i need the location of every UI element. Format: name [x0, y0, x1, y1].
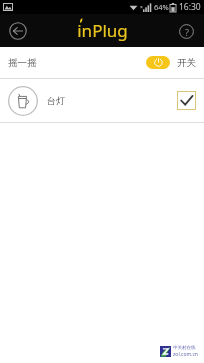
button[interactable]: Help — [176, 21, 196, 41]
staticText: 16:30 — [179, 1, 201, 13]
button[interactable]: 摇一摇 — [0, 47, 204, 78]
staticText: inPlug — [77, 19, 128, 42]
staticText: 摇一摇 — [8, 57, 37, 69]
staticText: zol.com.cn — [173, 351, 198, 358]
button[interactable]: Power toggle — [146, 56, 170, 69]
staticText: 中关村在线 — [173, 345, 196, 351]
staticText: 台灯 — [47, 95, 65, 106]
staticText: 64% — [154, 2, 169, 12]
button[interactable]: Back — [8, 21, 28, 41]
button[interactable]: 台灯 — [0, 79, 204, 122]
staticText: ? — [185, 26, 189, 38]
staticText: × — [140, 4, 143, 11]
staticText: 开关 — [177, 57, 196, 69]
button[interactable]: Selected — [177, 91, 196, 110]
